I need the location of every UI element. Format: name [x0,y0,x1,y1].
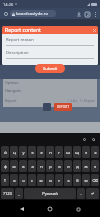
button[interactable]: Home [44,203,56,215]
button[interactable]: ↑ [1,174,9,186]
staticText: Submit [43,66,57,72]
staticText: Русский [42,191,58,196]
button[interactable]: ю [82,174,90,186]
staticText: Report content [5,27,41,34]
staticText: , [18,191,20,196]
staticText: ↑ [3,178,7,183]
staticText: Report reason [6,37,34,43]
staticText: к [31,150,34,155]
button[interactable]: е [37,146,45,158]
button[interactable]: . [77,188,85,199]
button[interactable]: REPORT [54,103,72,111]
staticText: с [31,178,33,183]
button[interactable]: с [28,174,36,186]
staticText: в [22,164,25,169]
button[interactable]: boardcastyde.ru [10,10,56,17]
staticText: 14:26 [3,2,14,7]
button[interactable]: ?123 [1,188,14,199]
staticText: Description [6,50,29,56]
button[interactable]: ↵ [86,188,99,199]
button[interactable]: б [73,174,81,186]
button[interactable]: ы [10,160,18,172]
button[interactable]: Submit [35,64,65,73]
staticText: з [85,150,87,155]
button[interactable]: э [91,160,99,172]
button[interactable]: х [91,146,99,158]
staticText: л [67,164,70,169]
button[interactable]: н [46,146,54,158]
staticText: ц [13,150,16,155]
button[interactable]: л [64,160,72,172]
button[interactable]: More options [91,10,99,18]
button[interactable]: Recents [72,203,84,215]
staticText: boardcastyde.ru [16,11,49,17]
staticText: г [58,150,60,155]
staticText: я [13,178,16,183]
button[interactable]: ш [64,146,72,158]
staticText: щ [75,150,79,155]
button[interactable]: щ [73,146,81,158]
staticText: э [94,164,96,169]
staticText: ш [66,150,70,155]
staticText: е [40,150,43,155]
button[interactable]: д [73,160,81,172]
button[interactable]: Close [90,26,98,34]
staticText: д [76,164,79,169]
staticText: н [49,150,52,155]
button[interactable]: Settings [81,136,88,143]
staticText: ↵ [91,191,95,196]
button[interactable]: ч [19,174,27,186]
staticText: 2 [87,12,89,17]
button[interactable]: т [55,174,63,186]
staticText: Opinion [5,80,19,85]
button[interactable]: ц [10,146,18,158]
button[interactable]: Русский [24,188,76,199]
button[interactable]: ж [82,160,90,172]
staticText: ж [84,164,88,169]
button[interactable]: р [46,160,54,172]
staticText: . [80,191,82,196]
button[interactable]: Downloads [75,10,83,18]
button[interactable]: у [19,146,27,158]
staticText: р [49,164,52,169]
button[interactable]: в [19,160,27,172]
staticText: й [4,150,7,155]
staticText: REPORT [57,105,69,109]
staticText: б [76,178,79,183]
button[interactable]: г [55,146,63,158]
staticText: ф [4,164,7,169]
staticText: и [49,178,52,183]
button[interactable]: ⌫ [91,174,99,186]
button[interactable]: о [55,160,63,172]
button[interactable]: ф [1,160,9,172]
button[interactable]: я [10,174,18,186]
staticText: х [94,150,97,155]
button[interactable]: з [82,146,90,158]
button[interactable]: м [37,174,45,186]
button[interactable]: , [15,188,23,199]
staticText: а [31,164,34,169]
button[interactable]: Home [2,10,10,18]
staticText: Hangots [5,88,21,93]
button[interactable]: Repost [43,103,51,111]
button[interactable]: Search [90,136,97,143]
staticText: т [58,178,60,183]
button[interactable]: п [37,160,45,172]
button[interactable]: к [28,146,36,158]
staticText: ч [22,178,25,183]
staticText: Report [5,98,17,103]
staticText: ь [67,178,70,183]
staticText: ы [12,164,16,169]
staticText: ♡ Like ↻ Repost [67,98,95,103]
button[interactable]: а [28,160,36,172]
button[interactable]: Back [16,203,28,215]
button[interactable]: й [1,146,9,158]
button[interactable]: и [46,174,54,186]
button[interactable]: ь [64,174,72,186]
staticText: о [58,164,61,169]
staticText: ю [84,178,88,183]
staticText: м [39,178,43,183]
staticText: ?123 [3,191,12,196]
staticText: п [40,164,43,169]
button[interactable]: Tabs [83,10,91,18]
